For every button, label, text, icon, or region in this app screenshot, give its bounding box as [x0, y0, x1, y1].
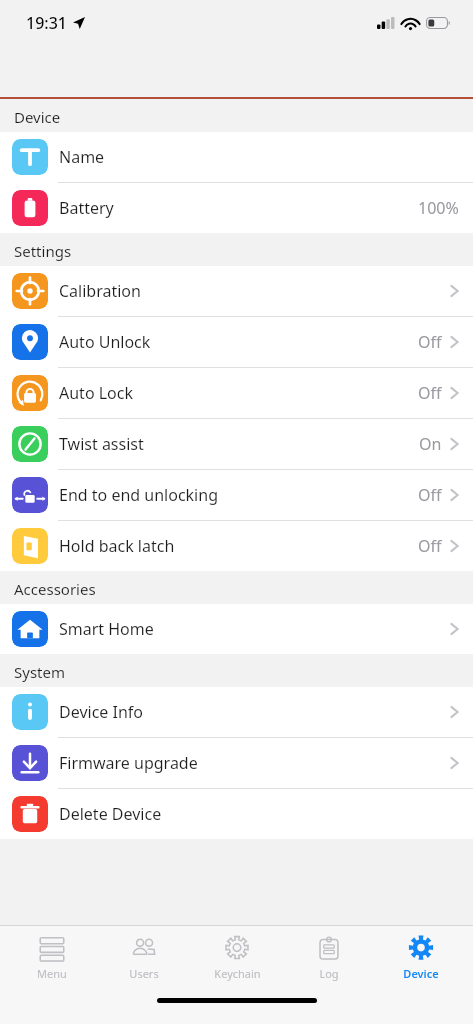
staticText: Smart Home: [59, 618, 154, 640]
staticText: Delete Device: [59, 803, 162, 825]
staticText: Battery: [59, 197, 114, 219]
staticText: Settings: [14, 241, 72, 261]
staticText: Off: [418, 535, 442, 557]
staticText: Name: [59, 146, 105, 168]
staticText: Off: [418, 382, 442, 404]
staticText: 100%: [418, 197, 459, 219]
staticText: Keychain: [214, 966, 261, 981]
button[interactable]: Menu: [12, 935, 92, 981]
staticText: Calibration: [59, 280, 141, 302]
button[interactable]: Device: [381, 935, 461, 981]
button[interactable]: Battery: [0, 183, 473, 233]
button[interactable]: Calibration: [0, 266, 473, 316]
staticText: Auto Lock: [59, 382, 134, 404]
button[interactable]: Users: [104, 935, 184, 981]
button[interactable]: Hold back latch: [0, 521, 473, 571]
button[interactable]: Smart Home: [0, 604, 473, 654]
button[interactable]: Log: [289, 935, 369, 981]
button[interactable]: Auto Unlock: [0, 317, 473, 367]
staticText: Off: [418, 484, 442, 506]
staticText: Device: [14, 107, 61, 127]
staticText: On: [419, 433, 442, 455]
staticText: Accessories: [14, 579, 96, 599]
staticText: Device Info: [59, 701, 144, 723]
staticText: Menu: [37, 966, 67, 981]
button[interactable]: Name: [0, 132, 473, 182]
staticText: 19:31: [26, 12, 67, 34]
staticText: Hold back latch: [59, 535, 175, 557]
staticText: Off: [418, 331, 442, 353]
staticText: Auto Unlock: [59, 331, 151, 353]
staticText: System: [14, 662, 65, 682]
button[interactable]: Firmware upgrade: [0, 738, 473, 788]
button[interactable]: Auto Lock: [0, 368, 473, 418]
staticText: Twist assist: [59, 433, 144, 455]
button[interactable]: Delete Device: [0, 789, 473, 839]
button[interactable]: Twist assist: [0, 419, 473, 469]
staticText: Device: [403, 966, 439, 981]
staticText: End to end unlocking: [59, 484, 218, 506]
button[interactable]: Keychain: [197, 935, 277, 981]
staticText: Log: [319, 966, 339, 981]
button[interactable]: Device Info: [0, 687, 473, 737]
button[interactable]: End to end unlocking: [0, 470, 473, 520]
staticText: Users: [129, 966, 159, 981]
staticText: Firmware upgrade: [59, 752, 198, 774]
